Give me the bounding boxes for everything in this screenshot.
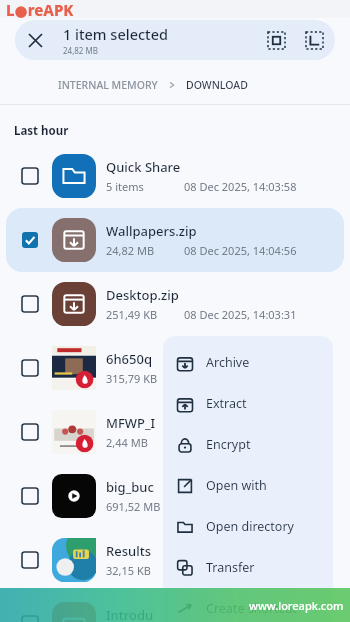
staticText: big_buc	[106, 478, 154, 496]
button[interactable]: Create shortcut	[163, 588, 333, 622]
staticText: Extract	[206, 395, 247, 412]
staticText: www.loreapk.com	[249, 598, 344, 613]
staticText: 251,49 KB	[106, 307, 184, 322]
button[interactable]: Select Quick Share	[6, 144, 344, 208]
staticText: 24,82 MB	[106, 243, 184, 258]
staticText: DOWNLOAD	[186, 78, 248, 92]
button[interactable]: Close selection	[15, 20, 55, 60]
staticText: 08 Dec 2025, 14:03:05	[184, 563, 297, 578]
button[interactable]: Select 6h650q	[6, 336, 344, 400]
button[interactable]: Select all	[257, 21, 295, 59]
staticText: Quick Share	[106, 158, 181, 176]
button[interactable]: Transfer	[163, 547, 333, 588]
button[interactable]: Select Desktop.zip	[6, 272, 344, 336]
button[interactable]: Select MFWP_I	[16, 418, 44, 446]
staticText: Last hour	[14, 123, 69, 139]
button[interactable]: Encrypt	[163, 424, 333, 465]
staticText: 315,79 KB	[106, 371, 184, 386]
button[interactable]: Select big_buc	[6, 464, 344, 528]
button[interactable]: Select 6h650q	[16, 354, 44, 382]
button[interactable]: Select MFWP_I	[6, 400, 344, 464]
staticText: 08 Dec 2025, 14:03:24	[184, 435, 297, 450]
staticText: Introdu	[106, 606, 154, 622]
staticText: 08 Dec 2025, 14:03:58	[184, 179, 297, 194]
button[interactable]: Select Quick Share	[16, 162, 44, 190]
button[interactable]: Open directory	[163, 506, 333, 547]
staticText: Results	[106, 542, 151, 560]
staticText: Open with	[206, 477, 267, 494]
staticText: 5 items	[106, 179, 184, 194]
button[interactable]: Select Wallpapers.zip	[6, 208, 344, 272]
button[interactable]: Select Results	[6, 528, 344, 592]
staticText: Open directory	[206, 518, 294, 535]
button[interactable]: Open with	[163, 465, 333, 506]
staticText: Encrypt	[206, 436, 251, 453]
staticText: 6h650q	[106, 350, 152, 368]
staticText: 2,44 MB	[106, 435, 184, 450]
staticText: 08 Dec 2025, 14:04:56	[184, 243, 297, 258]
staticText: Desktop.zip	[106, 286, 179, 304]
button[interactable]: INTERNAL MEMORY	[58, 78, 158, 92]
button[interactable]: Deselect	[295, 21, 333, 59]
button[interactable]: Extract	[163, 383, 333, 424]
staticText: Transfer	[206, 559, 255, 576]
staticText: Wallpapers.zip	[106, 222, 197, 240]
staticText: 32,15 KB	[106, 563, 184, 578]
button[interactable]: Select Introdu	[16, 610, 44, 622]
staticText: 1 item selected	[63, 24, 168, 44]
button[interactable]: Select Desktop.zip	[16, 290, 44, 318]
staticText: 24,82 MB	[63, 45, 98, 56]
staticText: 691,52 MB	[106, 499, 184, 514]
staticText: L●reAPK	[6, 0, 74, 18]
staticText: INTERNAL MEMORY	[58, 78, 158, 92]
staticText: 08 Dec 2025, 14:03:29	[184, 371, 297, 386]
button[interactable]: Select Results	[16, 546, 44, 574]
staticText: 08 Dec 2025, 14:03:31	[184, 307, 297, 322]
button[interactable]: Select Introdu	[6, 592, 344, 622]
button[interactable]: Archive	[163, 342, 333, 383]
staticText: MFWP_I	[106, 414, 156, 432]
staticText: Create shortcut	[206, 600, 297, 617]
button[interactable]: Select big_buc	[16, 482, 44, 510]
button[interactable]: DOWNLOAD	[186, 78, 248, 92]
staticText: Archive	[206, 354, 250, 371]
button[interactable]: Select Wallpapers.zip	[16, 226, 44, 254]
